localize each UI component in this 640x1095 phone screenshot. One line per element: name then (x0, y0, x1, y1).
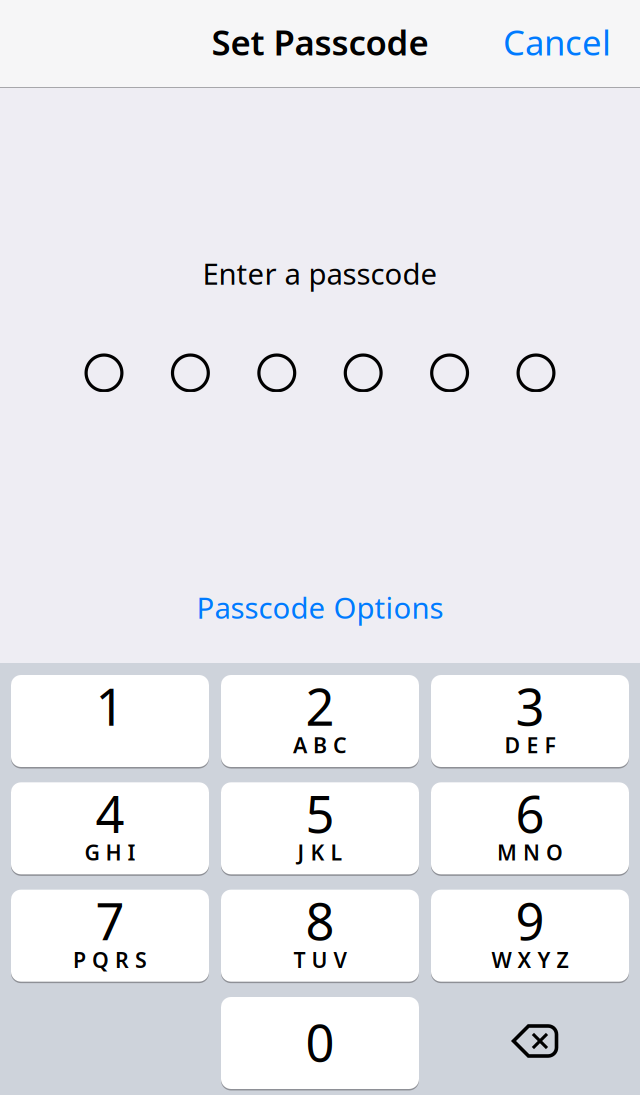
staticText: D E F (504, 731, 555, 759)
staticText: Cancel (503, 19, 611, 65)
button[interactable]: 9 (431, 890, 629, 982)
button[interactable]: 6 (431, 782, 629, 874)
staticText: G H I (84, 838, 135, 866)
staticText: 7 (95, 887, 124, 954)
button[interactable]: 7 (11, 890, 209, 982)
button[interactable]: 2 (221, 675, 419, 767)
staticText: W X Y Z (491, 945, 568, 974)
staticText: M N O (497, 838, 563, 866)
staticText: Passcode Options (196, 588, 443, 627)
staticText: T U V (293, 945, 346, 974)
staticText: 0 (305, 1008, 334, 1076)
staticText: 3 (515, 672, 544, 740)
button[interactable]: 8 (221, 890, 419, 982)
button[interactable]: 3 (431, 675, 629, 767)
staticText: 8 (305, 887, 334, 954)
staticText: 6 (515, 780, 544, 847)
button[interactable]: Cancel (487, 9, 627, 75)
button[interactable]: 1 (11, 675, 209, 767)
staticText: Set Passcode (211, 19, 428, 65)
button[interactable]: Delete (431, 997, 629, 1089)
staticText: 2 (305, 672, 334, 740)
staticText: Enter a passcode (202, 254, 437, 293)
button[interactable]: 0 (221, 997, 419, 1089)
staticText: A B C (293, 731, 347, 759)
button[interactable]: 4 (11, 782, 209, 874)
staticText: 9 (515, 887, 544, 954)
staticText: 1 (95, 672, 124, 740)
staticText: 5 (305, 780, 334, 847)
button[interactable]: Passcode Options (176, 582, 463, 633)
staticText: 4 (95, 780, 124, 847)
button[interactable]: 5 (221, 782, 419, 874)
staticText: P Q R S (73, 945, 147, 974)
staticText: J K L (297, 838, 342, 866)
